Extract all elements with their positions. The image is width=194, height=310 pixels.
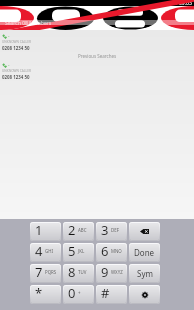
staticText: DEF	[111, 227, 119, 233]
button[interactable]: 6	[96, 243, 127, 262]
button[interactable]: 7	[30, 264, 61, 283]
staticText: 5	[68, 243, 76, 260]
button[interactable]: Done	[129, 243, 160, 262]
staticText: 0208 1234 50	[2, 74, 30, 80]
button[interactable]: 8	[63, 264, 94, 283]
button[interactable]: 1	[30, 222, 61, 241]
staticText: GHI	[45, 248, 53, 254]
button[interactable]: 2	[63, 222, 94, 241]
button[interactable]: 5	[63, 243, 94, 262]
button[interactable]: 9	[96, 264, 127, 283]
staticText: 09:03	[179, 0, 192, 6]
button[interactable]: Delete	[129, 222, 160, 241]
staticText: WXYZ	[111, 269, 123, 275]
staticText: Done	[134, 247, 155, 258]
staticText: 7	[35, 264, 43, 281]
button[interactable]: 3	[96, 222, 127, 241]
staticText: Search 08 Numbers	[5, 20, 52, 27]
staticText: 0208 1234 50	[2, 45, 30, 51]
staticText: 6	[101, 243, 109, 260]
staticText: •	[8, 34, 10, 39]
staticText: UNKNOWN CALLER	[2, 69, 31, 73]
staticText: #	[101, 285, 110, 302]
button[interactable]: 4	[30, 243, 61, 262]
staticText: 8	[68, 264, 76, 281]
staticText: Previous Searches	[78, 53, 117, 59]
staticText: ABC	[78, 227, 87, 233]
staticText: MNO	[111, 248, 122, 254]
staticText: TUV	[78, 269, 87, 275]
button[interactable]: #	[96, 285, 127, 304]
staticText: +	[78, 290, 81, 296]
staticText: 9	[101, 264, 109, 281]
staticText: PQRS	[45, 269, 57, 275]
staticText: 3	[101, 222, 109, 239]
staticText: 0	[68, 285, 76, 302]
staticText: *	[35, 285, 43, 302]
staticText: 4	[35, 243, 43, 260]
staticText: 98%	[167, 0, 177, 6]
staticText: Sym	[137, 268, 153, 279]
staticText: •	[8, 63, 10, 68]
button[interactable]: •	[0, 63, 194, 80]
staticText: 1	[35, 222, 43, 239]
staticText: UNKNOWN CALLER	[2, 40, 31, 44]
button[interactable]: Settings	[129, 285, 160, 304]
button[interactable]: •	[0, 34, 194, 51]
button[interactable]: 0	[63, 285, 94, 304]
staticText: 2	[68, 222, 76, 239]
button[interactable]: Sym	[129, 264, 160, 283]
staticText: JKL	[78, 248, 85, 254]
button[interactable]: *	[30, 285, 61, 304]
